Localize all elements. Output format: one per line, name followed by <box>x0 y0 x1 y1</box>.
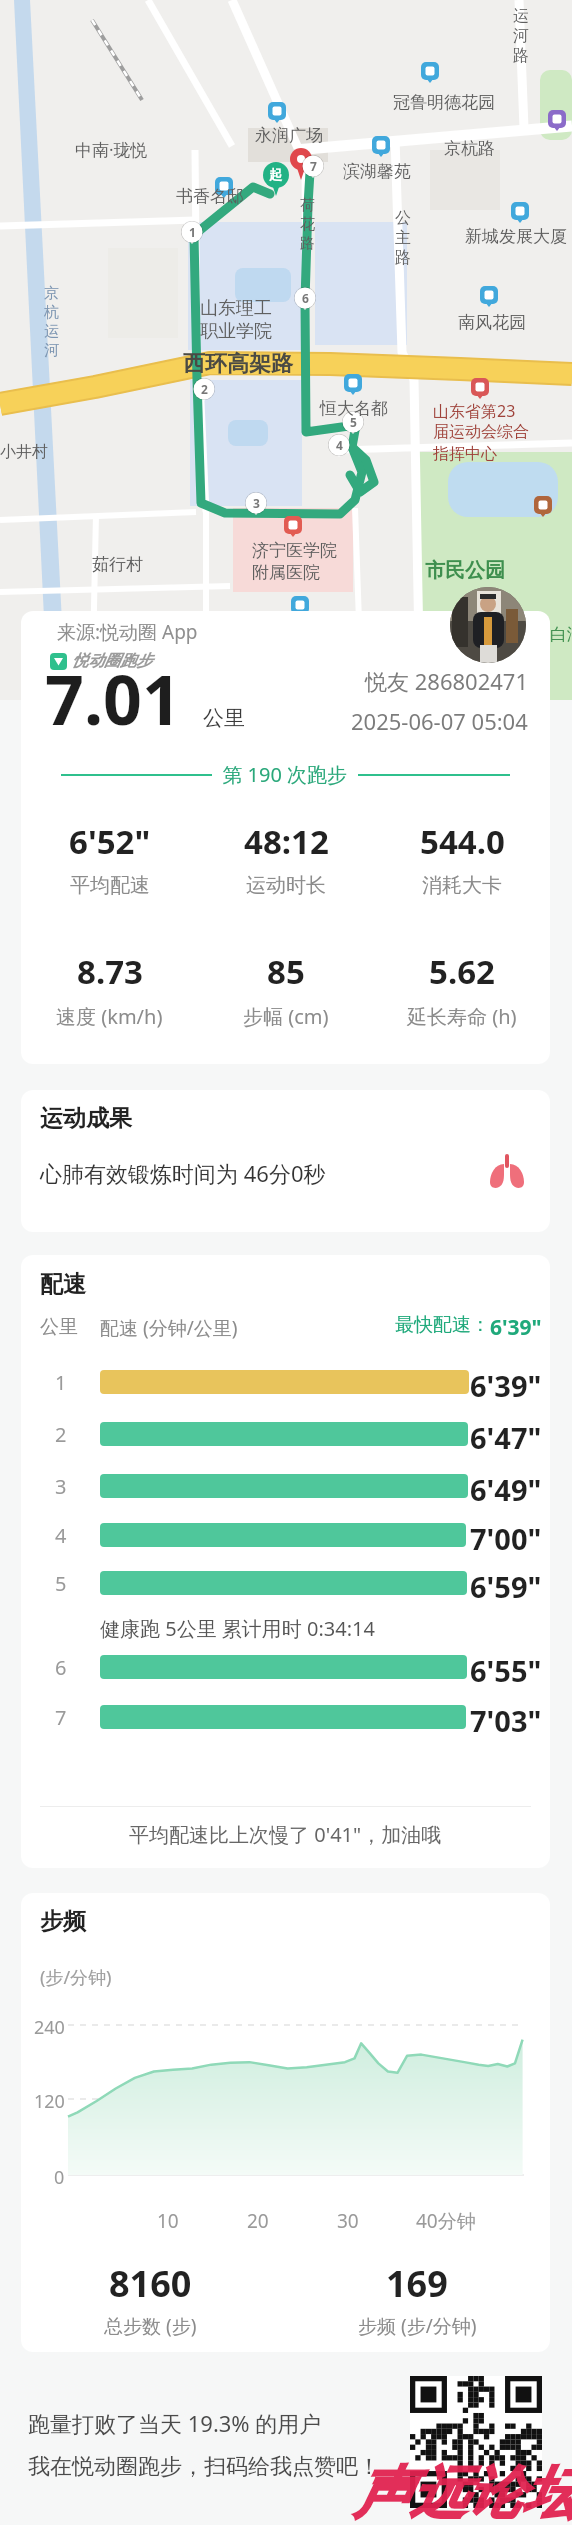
staticText: 杭 <box>44 303 59 322</box>
staticText: 京杭路 <box>444 138 495 159</box>
staticText: 心肺有效锻炼时间为 46分0秒 <box>40 1158 326 1188</box>
staticText: 40分钟 <box>416 2208 476 2234</box>
staticText: 3 <box>55 1473 67 1500</box>
staticText: 跑量打败了当天 19.3% 的用户 <box>28 2408 322 2438</box>
staticText: 7'03" <box>470 1701 542 1733</box>
staticText: 6'59" <box>470 1567 542 1599</box>
staticText: 京 <box>44 284 59 303</box>
staticText: 公里 <box>203 705 245 731</box>
staticText: 冠鲁明德花园 <box>393 92 495 113</box>
staticText: 6'55" <box>470 1651 542 1683</box>
button[interactable]: 悦动圈跑步 <box>50 651 152 671</box>
staticText: 6 <box>302 290 309 306</box>
staticText: 最快配速： <box>395 1313 490 1337</box>
staticText: 7'00" <box>470 1519 542 1551</box>
staticText: 路 <box>300 234 315 253</box>
staticText: 8160 <box>109 2259 192 2308</box>
button[interactable] <box>410 2376 542 2508</box>
staticText: 花 <box>300 215 315 234</box>
staticText: 职业学院 <box>200 320 272 343</box>
staticText: 总步数 (步) <box>104 2313 197 2339</box>
staticText: 河 <box>44 341 59 360</box>
staticText: 2 <box>201 381 208 397</box>
staticText: 路 <box>395 248 411 268</box>
staticText: 悦友 286802471 <box>365 666 528 696</box>
staticText: 平均配速比上次慢了 0'41"，加油哦 <box>129 1821 442 1848</box>
staticText: 白湖 <box>550 624 572 645</box>
staticText: 声远论坛 <box>354 2458 572 2525</box>
staticText: 中南·珑悦 <box>75 138 148 161</box>
staticText: 169 <box>386 2259 448 2308</box>
staticText: 1 <box>189 224 196 240</box>
staticText: 河 <box>513 26 529 46</box>
staticText: 120 <box>34 2089 65 2114</box>
staticText: 运 <box>513 6 529 26</box>
staticText: 指挥中心 <box>433 444 497 464</box>
staticText: 7 <box>55 1704 67 1731</box>
staticText: 5.62 <box>429 949 495 994</box>
staticText: 速度 (km/h) <box>56 1003 163 1030</box>
staticText: 5 <box>350 414 357 430</box>
staticText: 1 <box>55 1369 67 1396</box>
staticText: 配速 <box>40 1270 86 1299</box>
staticText: 起 <box>269 166 282 182</box>
staticText: 4 <box>336 437 343 453</box>
staticText: 7 <box>310 158 317 174</box>
staticText: (步/分钟) <box>40 1965 112 1990</box>
button[interactable] <box>450 587 526 663</box>
staticText: 市民公园 <box>425 558 505 583</box>
staticText: 附属医院 <box>252 562 320 583</box>
staticText: 消耗大卡 <box>422 873 502 898</box>
staticText: 10 <box>157 2208 179 2234</box>
staticText: 永润广场 <box>255 125 323 146</box>
staticText: 第 190 次跑步 <box>212 761 358 788</box>
staticText: 48:12 <box>244 819 329 864</box>
staticText: 恒大名都 <box>320 398 388 419</box>
staticText: 6'39" <box>490 1313 542 1342</box>
staticText: 滨湖馨苑 <box>343 161 411 182</box>
staticText: 悦动圈跑步 <box>72 651 152 671</box>
staticText: 运动成果 <box>40 1104 132 1133</box>
staticText: 240 <box>34 2015 65 2040</box>
staticText: 7.01 <box>45 652 181 745</box>
staticText: 南风花园 <box>458 312 526 333</box>
staticText: 0 <box>54 2165 65 2190</box>
staticText: 544.0 <box>420 819 505 864</box>
staticText: 2025-06-07 05:04 <box>351 706 528 736</box>
staticText: 西环高架路 <box>183 350 293 378</box>
staticText: 山东理工 <box>200 297 272 320</box>
staticText: 山东省第23 <box>433 400 516 422</box>
staticText: 济宁医学院 <box>252 540 337 561</box>
staticText: 延长寿命 (h) <box>407 1003 517 1030</box>
staticText: 书香名邸 <box>176 186 244 207</box>
staticText: 6'49" <box>470 1470 542 1502</box>
staticText: 6'52" <box>69 819 151 864</box>
staticText: 主 <box>395 228 411 248</box>
staticText: 2 <box>55 1421 67 1448</box>
staticText: 20 <box>247 2208 269 2234</box>
staticText: 5 <box>55 1570 67 1597</box>
staticText: 届运动会综合 <box>433 422 529 442</box>
staticText: 茹行村 <box>92 554 143 575</box>
staticText: 新城发展大厦 <box>465 226 567 247</box>
staticText: 公 <box>395 208 411 228</box>
staticText: 85 <box>267 949 305 994</box>
staticText: 4 <box>55 1522 67 1549</box>
staticText: 我在悦动圈跑步，扫码给我点赞吧！ <box>28 2453 380 2481</box>
staticText: 步频 <box>40 1907 86 1936</box>
staticText: 路 <box>513 46 529 66</box>
staticText: 小井村 <box>0 442 48 462</box>
staticText: 6'39" <box>470 1366 542 1398</box>
staticText: 6'47" <box>470 1418 542 1450</box>
staticText: 荷 <box>300 196 315 215</box>
staticText: 步幅 (cm) <box>243 1003 329 1030</box>
staticText: 步频 (步/分钟) <box>358 2313 477 2339</box>
staticText: 30 <box>337 2208 359 2234</box>
staticText: 健康跑 5公里 累计用时 0:34:14 <box>100 1615 375 1642</box>
staticText: 8.73 <box>77 949 143 994</box>
staticText: 6 <box>55 1654 67 1681</box>
staticText: 平均配速 <box>70 873 150 898</box>
staticText: 配速 (分钟/公里) <box>100 1315 238 1341</box>
staticText: 运动时长 <box>246 873 326 898</box>
staticText: 3 <box>253 495 260 511</box>
